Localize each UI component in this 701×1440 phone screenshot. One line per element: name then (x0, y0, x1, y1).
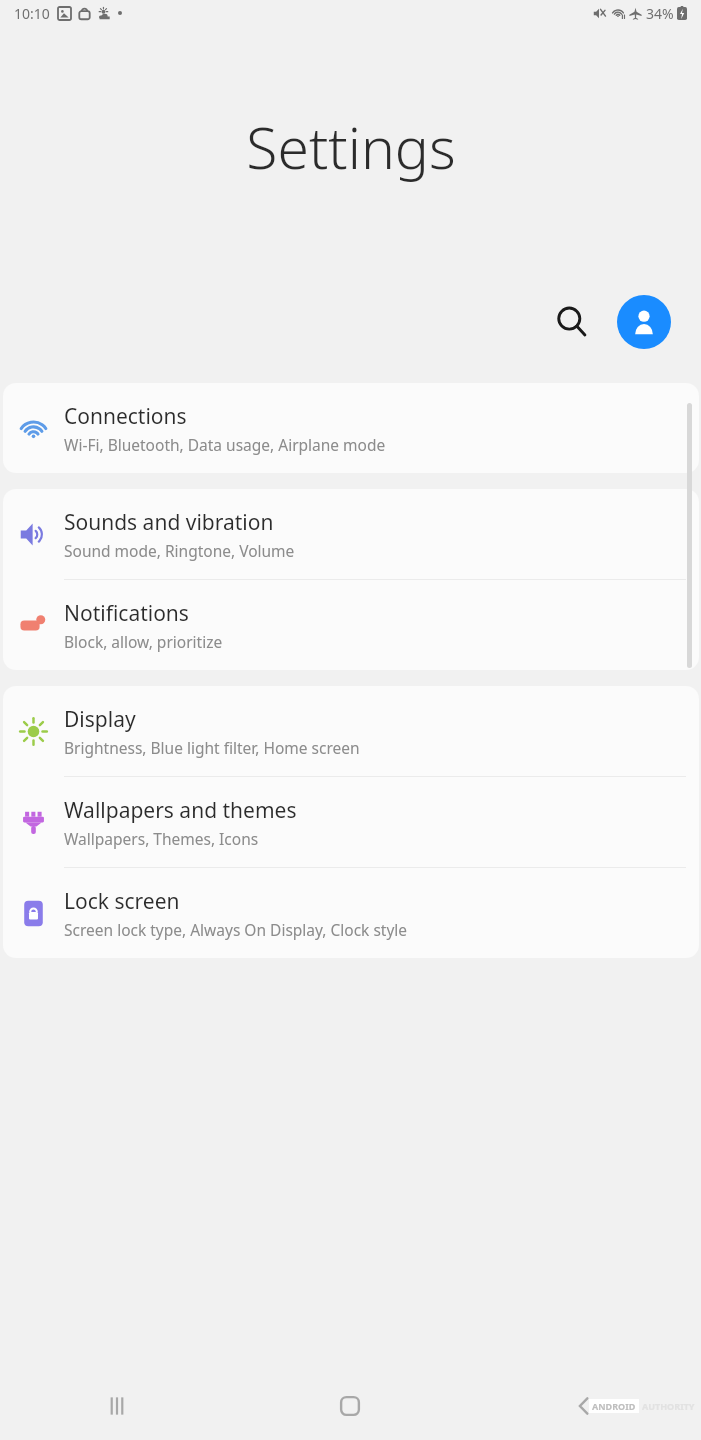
staticText: Sound mode, Ringtone, Volume (64, 540, 295, 561)
staticText: Block, allow, prioritize (64, 631, 223, 652)
staticText: ANDROID (592, 1400, 636, 1412)
staticText: Wallpapers, Themes, Icons (64, 828, 259, 849)
button[interactable]: Back (467, 1372, 701, 1440)
button[interactable]: Search (541, 291, 603, 353)
button[interactable]: Sounds and vibration (3, 489, 699, 579)
button[interactable]: Connections (3, 383, 699, 473)
staticText: Notifications (64, 599, 189, 628)
button[interactable]: Home (233, 1372, 467, 1440)
staticText: Sounds and vibration (64, 508, 274, 537)
staticText: Brightness, Blue light filter, Home scre… (64, 737, 360, 758)
button[interactable]: Notifications (3, 580, 699, 670)
staticText: Settings (246, 108, 456, 186)
staticText: Lock screen (64, 887, 180, 916)
staticText: Screen lock type, Always On Display, Clo… (64, 919, 408, 940)
staticText: Wallpapers and themes (64, 796, 297, 825)
staticText: Wi-Fi, Bluetooth, Data usage, Airplane m… (64, 434, 386, 455)
staticText: Connections (64, 402, 187, 431)
button[interactable]: Lock screen (3, 868, 699, 958)
button[interactable]: Display (3, 686, 699, 776)
staticText: AUTHORITY (642, 1400, 695, 1412)
staticText: Display (64, 705, 136, 734)
button[interactable]: Recents (0, 1372, 233, 1440)
staticText: 10:10 (14, 4, 50, 23)
staticText: 34% (646, 4, 674, 23)
button[interactable]: Wallpapers and themes (3, 777, 699, 867)
button[interactable]: Account (617, 295, 671, 349)
